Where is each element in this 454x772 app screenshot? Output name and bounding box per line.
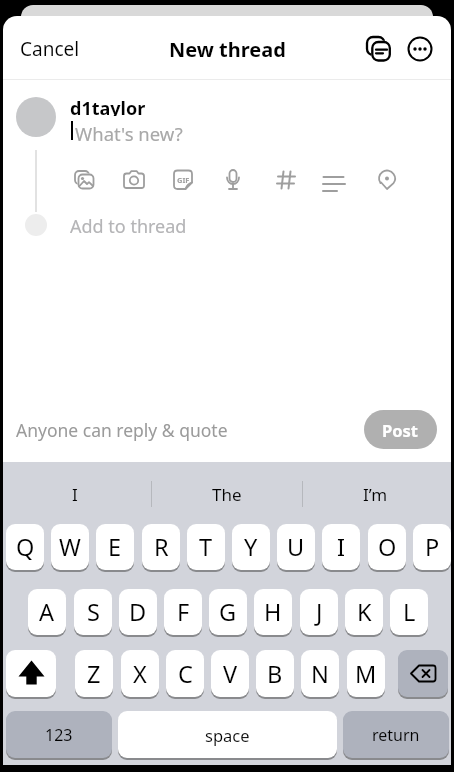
button[interactable]: B (256, 650, 294, 697)
staticText: Cancel (20, 36, 80, 62)
button[interactable]: E (96, 524, 134, 570)
staticText: F (177, 596, 190, 628)
button[interactable] (72, 168, 96, 192)
staticText: space (205, 724, 250, 746)
staticText: N (311, 658, 329, 690)
button[interactable]: Add to thread (70, 214, 270, 236)
button[interactable]: 123 (6, 711, 112, 758)
staticText: return (372, 724, 420, 746)
staticText: E (108, 531, 122, 563)
button[interactable]: R (142, 524, 180, 570)
button[interactable]: H (254, 589, 292, 635)
button[interactable]: K (345, 589, 383, 635)
staticText: Z (87, 658, 101, 690)
staticText: I (72, 483, 78, 506)
button[interactable]: I’m (330, 480, 420, 508)
button[interactable]: X (121, 650, 159, 697)
button[interactable]: return (343, 711, 449, 758)
staticText: Anyone can reply & quote (16, 418, 228, 442)
staticText: O (378, 531, 397, 563)
button[interactable]: Y (232, 524, 270, 570)
button[interactable]: U (277, 524, 315, 570)
staticText: Y (244, 531, 258, 563)
button[interactable]: A (28, 589, 66, 635)
staticText: D (129, 596, 147, 628)
button[interactable]: J (300, 589, 338, 635)
button[interactable]: P (413, 524, 451, 570)
staticText: J (316, 596, 323, 628)
button[interactable]: F (164, 589, 202, 635)
button[interactable]: S (74, 589, 112, 635)
button[interactable]: Post (364, 410, 437, 449)
button[interactable]: I (30, 480, 120, 508)
staticText: I (337, 531, 345, 563)
button[interactable]: I (322, 524, 360, 570)
staticText: K (357, 596, 372, 628)
button[interactable]: G (209, 589, 247, 635)
staticText: H (264, 596, 282, 628)
staticText: Q (16, 531, 35, 563)
staticText: I’m (363, 483, 388, 506)
button[interactable]: V (211, 650, 249, 697)
button[interactable]: space (118, 711, 337, 758)
button[interactable]: M (347, 650, 385, 697)
staticText: A (39, 596, 55, 628)
button[interactable]: Cancel (20, 26, 90, 72)
staticText: C (178, 658, 193, 690)
staticText: What's new? (75, 121, 183, 141)
button[interactable] (122, 168, 146, 192)
button[interactable] (6, 650, 56, 697)
staticText: B (267, 658, 283, 690)
staticText: P (425, 531, 440, 563)
staticText: d1taylor (70, 96, 146, 116)
staticText: W (59, 531, 81, 563)
staticText: 123 (45, 724, 73, 746)
staticText: V (223, 658, 238, 690)
staticText: L (403, 596, 416, 628)
button[interactable]: N (301, 650, 339, 697)
staticText: New thread (169, 36, 286, 63)
button[interactable] (274, 168, 298, 192)
button[interactable]: GIF (171, 168, 195, 192)
button[interactable] (360, 31, 396, 67)
staticText: Add to thread (70, 214, 187, 236)
staticText: X (133, 658, 147, 690)
button[interactable]: L (390, 589, 428, 635)
button[interactable]: Z (75, 650, 113, 697)
staticText: M (355, 658, 377, 690)
staticText: S (87, 596, 100, 628)
button[interactable] (398, 650, 448, 697)
staticText: U (287, 531, 305, 563)
button[interactable]: W (51, 524, 89, 570)
staticText: Post (382, 419, 419, 441)
staticText: G (219, 596, 237, 628)
staticText: R (154, 531, 169, 563)
button[interactable]: T (187, 524, 225, 570)
button[interactable]: C (166, 650, 204, 697)
staticText: GIF (177, 175, 190, 185)
button[interactable]: Q (6, 524, 44, 570)
button[interactable] (322, 168, 346, 192)
button[interactable] (221, 168, 245, 192)
button[interactable]: The (182, 480, 272, 508)
button[interactable]: O (368, 524, 406, 570)
staticText: T (199, 531, 213, 563)
staticText: The (212, 483, 242, 506)
button[interactable]: D (119, 589, 157, 635)
button[interactable] (375, 168, 399, 192)
button[interactable] (406, 35, 434, 63)
